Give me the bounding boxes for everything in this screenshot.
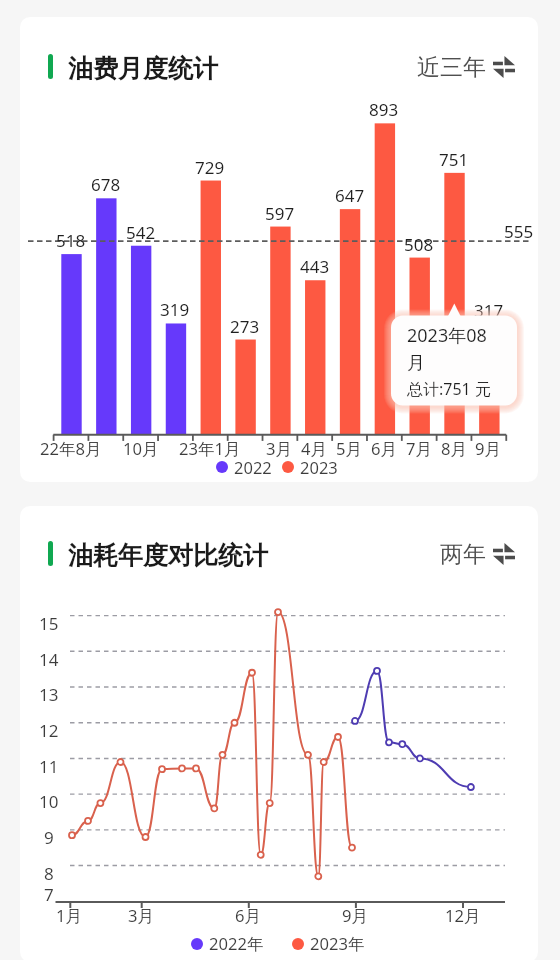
staticText: 6月 <box>235 904 262 927</box>
staticText: 555 <box>504 220 534 243</box>
staticText: 2023年08 <box>407 323 487 348</box>
staticText: 22年8月 <box>40 437 102 460</box>
staticText: 14 <box>39 648 59 671</box>
staticText: 317 <box>474 299 504 322</box>
staticText: 11 <box>39 755 59 778</box>
staticText: 23年1月 <box>179 437 241 460</box>
staticText: 319 <box>160 298 190 321</box>
staticText: 647 <box>335 184 365 207</box>
staticText: 8月 <box>441 437 468 460</box>
staticText: 273 <box>230 315 260 338</box>
staticText: 油耗年度对比统计 <box>68 540 268 571</box>
staticText: 两年 <box>440 540 486 569</box>
button[interactable]: 两年 <box>406 534 518 574</box>
staticText: 3月 <box>128 904 155 927</box>
staticText: 9月 <box>475 437 502 460</box>
staticText: 597 <box>265 202 295 225</box>
staticText: 近三年 <box>417 53 486 82</box>
staticText: 油费月度统计 <box>68 53 218 84</box>
staticText: 12月 <box>445 904 481 927</box>
staticText: 6月 <box>371 437 398 460</box>
staticText: 2023年 <box>310 932 365 955</box>
staticText: 443 <box>300 255 330 278</box>
button[interactable]: 近三年 <box>406 47 518 87</box>
button[interactable]: 2023年08月 总计751元 <box>391 315 519 406</box>
staticText: 9 <box>44 826 54 849</box>
staticText: 3月 <box>266 437 293 460</box>
staticText: 893 <box>369 98 399 121</box>
staticText: 15 <box>39 612 59 635</box>
staticText: 542 <box>126 221 156 244</box>
staticText: 2022 <box>234 456 272 478</box>
staticText: 2023 <box>300 456 338 478</box>
staticText: 751 <box>439 148 469 171</box>
staticText: 5月 <box>336 437 363 460</box>
staticText: 13 <box>39 683 59 706</box>
staticText: 508 <box>404 233 434 256</box>
staticText: 总计:751 元 <box>407 378 491 400</box>
staticText: 10 <box>39 790 59 813</box>
staticText: 518 <box>56 229 86 252</box>
staticText: 12 <box>39 719 59 742</box>
staticText: 2022年 <box>209 932 264 955</box>
staticText: 729 <box>195 156 225 179</box>
staticText: 678 <box>91 173 121 196</box>
staticText: 9月 <box>342 904 369 927</box>
staticText: 8 <box>44 862 54 885</box>
staticText: 7月 <box>406 437 433 460</box>
staticText: 7 <box>44 883 54 906</box>
staticText: 1月 <box>56 904 83 927</box>
staticText: 10月 <box>123 437 159 460</box>
staticText: 月 <box>407 352 425 375</box>
staticText: 4月 <box>301 437 328 460</box>
